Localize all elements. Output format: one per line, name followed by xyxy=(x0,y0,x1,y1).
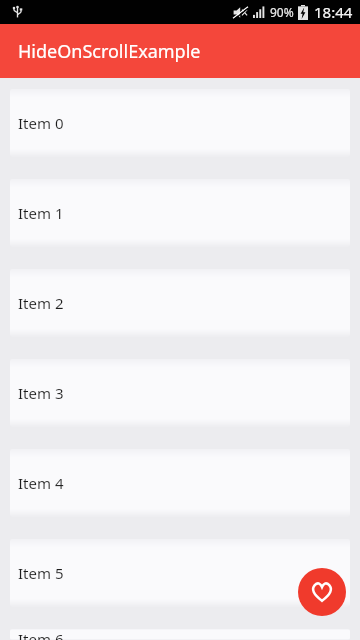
staticText: Item 4 xyxy=(18,473,64,493)
staticText: Item 3 xyxy=(18,383,64,403)
staticText: Item 0 xyxy=(18,113,64,133)
staticText: 90% xyxy=(270,4,294,20)
button[interactable]: Item 4 xyxy=(10,449,350,517)
button[interactable]: Item 6 xyxy=(10,629,350,640)
staticText: HideOnScrollExample xyxy=(18,39,201,64)
button[interactable]: Item 1 xyxy=(10,179,350,247)
staticText: Item 5 xyxy=(18,563,64,583)
button[interactable]: Item 0 xyxy=(10,89,350,157)
button[interactable]: Favorite xyxy=(298,568,346,616)
button[interactable]: Item 3 xyxy=(10,359,350,427)
button[interactable]: Item 2 xyxy=(10,269,350,337)
staticText: Item 1 xyxy=(18,203,64,223)
staticText: Item 2 xyxy=(18,293,64,313)
staticText: Item 6 xyxy=(18,629,64,640)
staticText: 18:44 xyxy=(314,2,353,22)
button[interactable]: Item 5 xyxy=(10,539,350,607)
